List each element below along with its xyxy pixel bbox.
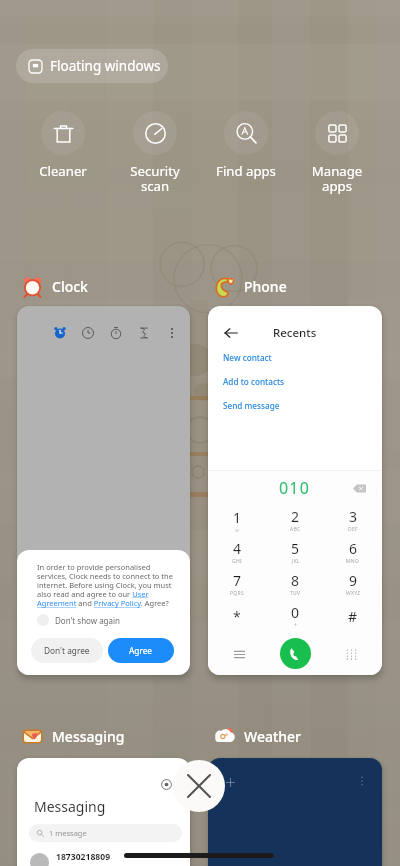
button[interactable]: Manage apps bbox=[293, 111, 381, 195]
staticText: 18730218809 bbox=[56, 851, 111, 863]
button[interactable]: Cleaner bbox=[19, 111, 107, 180]
button[interactable]: 2 bbox=[266, 504, 324, 536]
staticText: Cleaner bbox=[19, 162, 107, 180]
button[interactable]: Don't agree bbox=[31, 638, 103, 663]
button[interactable]: Send message bbox=[208, 393, 382, 417]
staticText: Weather bbox=[244, 727, 302, 746]
staticText: 5 bbox=[291, 539, 300, 558]
button[interactable]: Messaging bbox=[17, 758, 190, 866]
button[interactable]: 4 bbox=[208, 536, 266, 568]
staticText: # bbox=[348, 607, 358, 626]
staticText: Clock bbox=[52, 277, 88, 296]
button[interactable]: Security scan bbox=[111, 111, 199, 195]
staticText: TUV bbox=[290, 590, 301, 597]
staticText: 1 bbox=[233, 508, 242, 527]
staticText: 0 bbox=[291, 603, 300, 622]
button[interactable]: 1 bbox=[208, 504, 266, 536]
staticText: 8 bbox=[291, 571, 300, 590]
staticText: Agree bbox=[129, 645, 153, 656]
button[interactable]: Keypad bbox=[340, 643, 362, 665]
staticText: JKL bbox=[292, 558, 300, 565]
button[interactable]: Phone bbox=[214, 273, 287, 299]
staticText: MNO bbox=[346, 558, 360, 565]
staticText: PQRS bbox=[230, 590, 244, 597]
staticText: Find apps bbox=[202, 162, 290, 180]
button[interactable]: Floating windows bbox=[16, 49, 168, 83]
staticText: WXYZ bbox=[346, 590, 361, 597]
staticText: * bbox=[233, 607, 241, 626]
button[interactable]: Back bbox=[208, 306, 382, 675]
button[interactable]: 3 bbox=[324, 504, 382, 536]
staticText: 7 bbox=[233, 571, 242, 590]
button[interactable]: Back bbox=[220, 322, 242, 344]
button[interactable]: Backspace bbox=[350, 479, 368, 497]
button[interactable]: 9 bbox=[324, 568, 382, 600]
staticText: 3 bbox=[349, 507, 358, 526]
staticText: Messaging bbox=[52, 727, 125, 746]
staticText: Send message bbox=[223, 400, 280, 411]
button[interactable]: Close bbox=[173, 760, 225, 812]
button[interactable]: New contact bbox=[208, 345, 382, 369]
staticText: ABC bbox=[290, 526, 301, 533]
button[interactable]: 7 bbox=[208, 568, 266, 600]
button[interactable]: 6 bbox=[324, 536, 382, 568]
staticText: 6 bbox=[349, 539, 358, 558]
staticText: Phone bbox=[244, 277, 287, 296]
staticText: + bbox=[294, 622, 298, 629]
staticText: GHI bbox=[232, 558, 242, 565]
staticText: ∞ bbox=[235, 527, 240, 533]
staticText: 9 bbox=[349, 571, 358, 590]
button[interactable]: Add city bbox=[208, 758, 382, 866]
staticText: Don't show again bbox=[55, 615, 121, 626]
button[interactable]: 8 bbox=[266, 568, 324, 600]
button[interactable]: Agree bbox=[108, 638, 174, 663]
staticText: Add to contacts bbox=[223, 376, 285, 387]
button[interactable]: * bbox=[208, 600, 266, 632]
button[interactable]: Add city bbox=[222, 774, 238, 790]
staticText: 2 bbox=[291, 507, 300, 526]
staticText: 1 message bbox=[49, 828, 87, 838]
button[interactable]: In order to provide personalised service… bbox=[17, 306, 190, 675]
button[interactable]: More options bbox=[354, 773, 370, 789]
staticText: In order to provide personalised service… bbox=[37, 562, 175, 609]
button[interactable]: Messaging bbox=[22, 723, 125, 749]
staticText: Floating windows bbox=[50, 57, 161, 75]
button[interactable]: Find apps bbox=[202, 111, 290, 180]
button[interactable]: Add to contacts bbox=[208, 369, 382, 393]
staticText: Messaging bbox=[34, 797, 106, 816]
button[interactable]: Call bbox=[280, 638, 311, 669]
staticText: Recents bbox=[273, 325, 317, 341]
button[interactable]: 1 message bbox=[29, 824, 182, 842]
staticText: Security scan bbox=[111, 162, 199, 195]
button[interactable]: Call log bbox=[228, 643, 250, 665]
staticText: New contact bbox=[223, 352, 272, 363]
button[interactable]: 5 bbox=[266, 536, 324, 568]
button[interactable]: Weather bbox=[214, 723, 302, 749]
button[interactable]: Clock bbox=[22, 273, 88, 299]
staticText: DEF bbox=[348, 526, 358, 533]
staticText: Don't agree bbox=[44, 645, 90, 656]
button[interactable]: 0 bbox=[266, 600, 324, 632]
staticText: Manage apps bbox=[293, 162, 381, 195]
staticText: 010 bbox=[279, 477, 311, 499]
button[interactable]: Don't show again bbox=[37, 614, 121, 626]
button[interactable]: # bbox=[324, 600, 382, 632]
staticText: 4 bbox=[233, 539, 242, 558]
